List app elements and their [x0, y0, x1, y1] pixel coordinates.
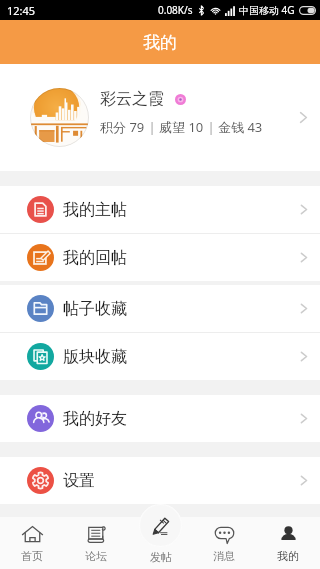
- button[interactable]: 我的好友: [0, 395, 320, 442]
- staticText: 首页: [21, 549, 43, 563]
- staticText: 我的: [277, 549, 299, 563]
- staticText: |: [204, 118, 218, 136]
- staticText: 中国移动 4G: [239, 3, 295, 17]
- button[interactable]: 消息: [192, 517, 256, 569]
- staticText: 帖子收藏: [63, 299, 300, 319]
- staticText: 论坛: [85, 549, 107, 563]
- button[interactable]: 帖子收藏: [0, 285, 320, 332]
- button[interactable]: 首页: [0, 517, 64, 569]
- staticText: 彩云之霞: [100, 89, 164, 109]
- button[interactable]: 我的: [256, 517, 320, 569]
- staticText: 金钱 43: [218, 118, 263, 136]
- button[interactable]: 我的回帖: [0, 234, 320, 281]
- staticText: 发帖: [150, 550, 172, 564]
- staticText: 0.08K/s: [158, 3, 193, 17]
- button[interactable]: 版块收藏: [0, 333, 320, 380]
- staticText: 我的: [143, 32, 177, 53]
- button[interactable]: 发帖: [139, 504, 182, 564]
- button[interactable]: 彩云之霞: [0, 64, 320, 171]
- button[interactable]: 我的主帖: [0, 186, 320, 233]
- staticText: |: [145, 118, 159, 136]
- staticText: 我的回帖: [63, 248, 300, 268]
- staticText: 我的好友: [63, 409, 300, 429]
- staticText: 12:45: [7, 3, 36, 18]
- staticText: 威望 10: [159, 118, 204, 136]
- staticText: 我的主帖: [63, 200, 300, 220]
- staticText: 版块收藏: [63, 347, 300, 367]
- staticText: 积分 79: [100, 118, 145, 136]
- button[interactable]: 设置: [0, 457, 320, 504]
- staticText: 设置: [63, 471, 300, 491]
- staticText: 消息: [213, 549, 235, 563]
- button[interactable]: 论坛: [64, 517, 128, 569]
